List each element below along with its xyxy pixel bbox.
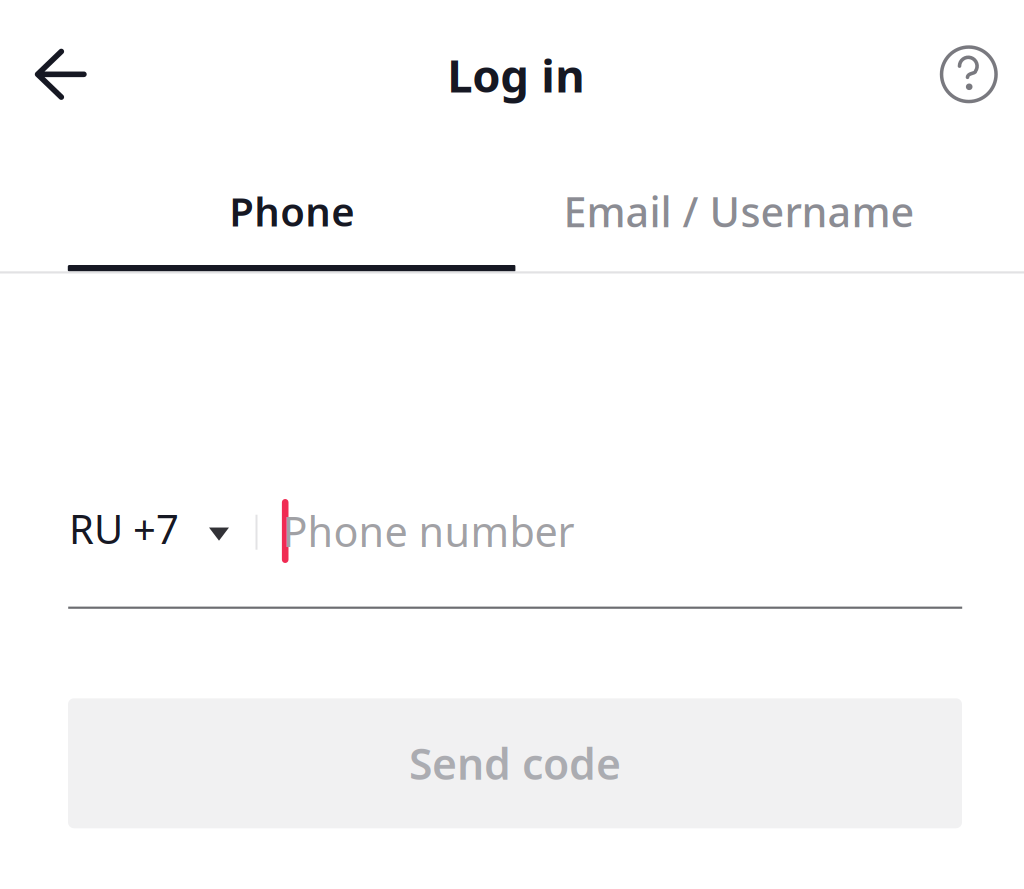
button[interactable]: Phone [68, 152, 515, 272]
button[interactable]: Phone number [285, 493, 963, 569]
button[interactable]: Help [921, 26, 1017, 122]
staticText: RU +7 [69, 502, 179, 555]
button[interactable]: Email / Username [515, 153, 962, 271]
staticText: Email / Username [563, 184, 914, 239]
staticText: Phone [229, 184, 354, 238]
staticText: Phone number [282, 504, 574, 558]
button[interactable]: Country calling code, RU +7 [69, 490, 229, 566]
staticText: Log in [447, 45, 584, 105]
button[interactable]: Send code [68, 698, 962, 828]
staticText: Send code [409, 735, 621, 792]
button[interactable]: Back [14, 26, 110, 122]
